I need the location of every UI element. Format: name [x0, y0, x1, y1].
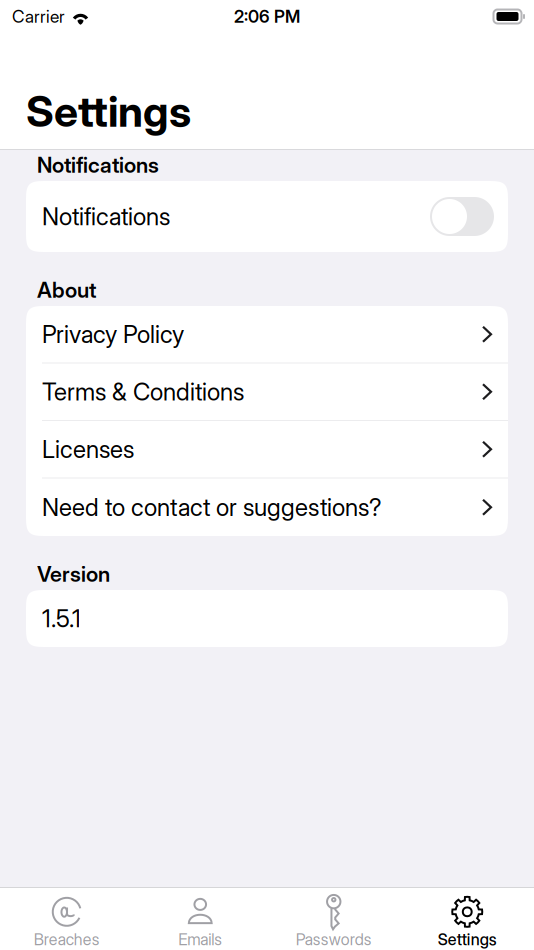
button[interactable]: Terms & Conditions: [26, 363, 508, 421]
button[interactable]: Privacy Policy: [26, 306, 508, 363]
button[interactable]: Passwords: [267, 888, 400, 950]
button[interactable]: Settings: [400, 888, 534, 950]
staticText: Passwords: [296, 930, 372, 949]
staticText: Settings: [26, 85, 191, 137]
button[interactable]: Need to contact or suggestions?: [26, 478, 508, 536]
staticText: 2:06 PM: [234, 6, 300, 27]
staticText: 1.5.1: [42, 604, 81, 633]
button[interactable]: Licenses: [26, 421, 508, 478]
staticText: Breaches: [34, 930, 100, 949]
staticText: Need to contact or suggestions?: [42, 493, 382, 522]
staticText: Licenses: [42, 435, 134, 464]
button[interactable]: Emails: [133, 888, 267, 950]
staticText: Settings: [438, 930, 497, 949]
staticText: Version: [37, 561, 110, 587]
staticText: Emails: [178, 930, 222, 949]
staticText: Carrier: [12, 6, 65, 27]
staticText: Privacy Policy: [42, 320, 184, 349]
staticText: About: [37, 277, 96, 303]
staticText: Notifications: [37, 152, 159, 178]
button[interactable]: Breaches: [0, 888, 133, 950]
staticText: Notifications: [42, 202, 170, 231]
staticText: Terms & Conditions: [42, 377, 244, 406]
